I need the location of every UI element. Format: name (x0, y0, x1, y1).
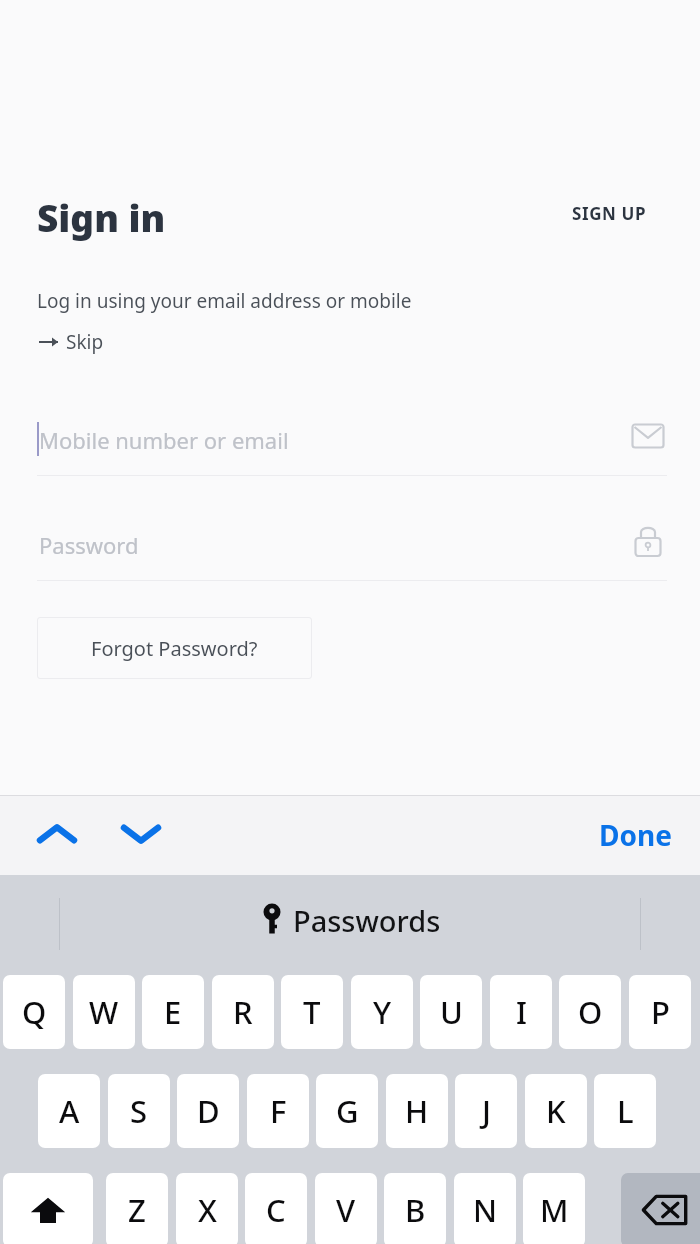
button[interactable]: R (212, 975, 274, 1049)
staticText: Password (39, 530, 139, 560)
other: Show password (630, 523, 666, 559)
staticText: Mobile number or email (39, 425, 289, 455)
button[interactable]: K (525, 1074, 587, 1148)
staticText: M (540, 1189, 569, 1231)
staticText: Passwords (293, 901, 441, 940)
staticText: A (59, 1090, 80, 1132)
button[interactable]: V (315, 1173, 377, 1244)
button[interactable]: Mobile number or email (37, 408, 667, 476)
staticText: X (198, 1189, 217, 1231)
button[interactable]: Password (37, 513, 667, 581)
staticText: R (233, 991, 253, 1033)
button[interactable]: S (108, 1074, 170, 1148)
staticText: J (482, 1090, 491, 1132)
staticText: Skip (66, 329, 104, 355)
staticText: L (617, 1090, 634, 1132)
button[interactable]: U (420, 975, 482, 1049)
staticText: Done (599, 816, 672, 854)
other: Email (630, 418, 666, 454)
button[interactable]: Backspace (621, 1173, 700, 1244)
staticText: O (578, 991, 603, 1033)
staticText: K (546, 1090, 566, 1132)
button[interactable]: Z (106, 1173, 168, 1244)
staticText: Q (22, 991, 47, 1033)
button[interactable]: SIGN UP (556, 196, 663, 231)
button[interactable]: B (384, 1173, 446, 1244)
button[interactable]: Q (3, 975, 65, 1049)
staticText: P (651, 991, 670, 1033)
staticText: F (270, 1090, 287, 1132)
button[interactable]: G (316, 1074, 378, 1148)
staticText: B (405, 1189, 426, 1231)
button[interactable]: F (247, 1074, 309, 1148)
staticText: N (473, 1189, 498, 1231)
button[interactable]: M (523, 1173, 585, 1244)
staticText: T (303, 991, 321, 1033)
staticText: W (89, 991, 119, 1033)
button[interactable]: Shift (3, 1173, 93, 1244)
staticText: S (130, 1090, 148, 1132)
staticText: Z (128, 1189, 146, 1231)
staticText: H (405, 1090, 429, 1132)
staticText: Log in using your email address or mobil… (37, 288, 412, 314)
staticText: V (336, 1189, 356, 1231)
button[interactable]: Done (589, 808, 682, 862)
staticText: D (197, 1090, 220, 1132)
button[interactable]: A (38, 1074, 100, 1148)
button[interactable]: L (594, 1074, 656, 1148)
staticText: U (440, 991, 463, 1033)
button[interactable]: P (629, 975, 691, 1049)
button[interactable]: H (386, 1074, 448, 1148)
button[interactable]: Passwords (249, 896, 451, 944)
button[interactable]: J (455, 1074, 517, 1148)
button[interactable]: C (245, 1173, 307, 1244)
button[interactable]: E (142, 975, 204, 1049)
button[interactable]: T (281, 975, 343, 1049)
staticText: C (266, 1189, 286, 1231)
button[interactable]: X (176, 1173, 238, 1244)
button[interactable]: N (454, 1173, 516, 1244)
staticText: G (336, 1090, 359, 1132)
staticText: Sign in (37, 192, 166, 242)
button[interactable]: Skip (34, 327, 108, 357)
button[interactable]: O (559, 975, 621, 1049)
staticText: I (516, 991, 527, 1033)
button[interactable]: W (73, 975, 135, 1049)
staticText: Forgot Password? (91, 635, 258, 662)
staticText: SIGN UP (572, 202, 647, 225)
staticText: Y (373, 991, 392, 1033)
button[interactable]: Forgot Password? (37, 617, 312, 679)
button[interactable]: I (490, 975, 552, 1049)
button[interactable]: Previous field (22, 803, 92, 865)
button[interactable]: Y (351, 975, 413, 1049)
button[interactable]: Next field (106, 803, 176, 865)
staticText: E (164, 991, 182, 1033)
button[interactable]: D (177, 1074, 239, 1148)
